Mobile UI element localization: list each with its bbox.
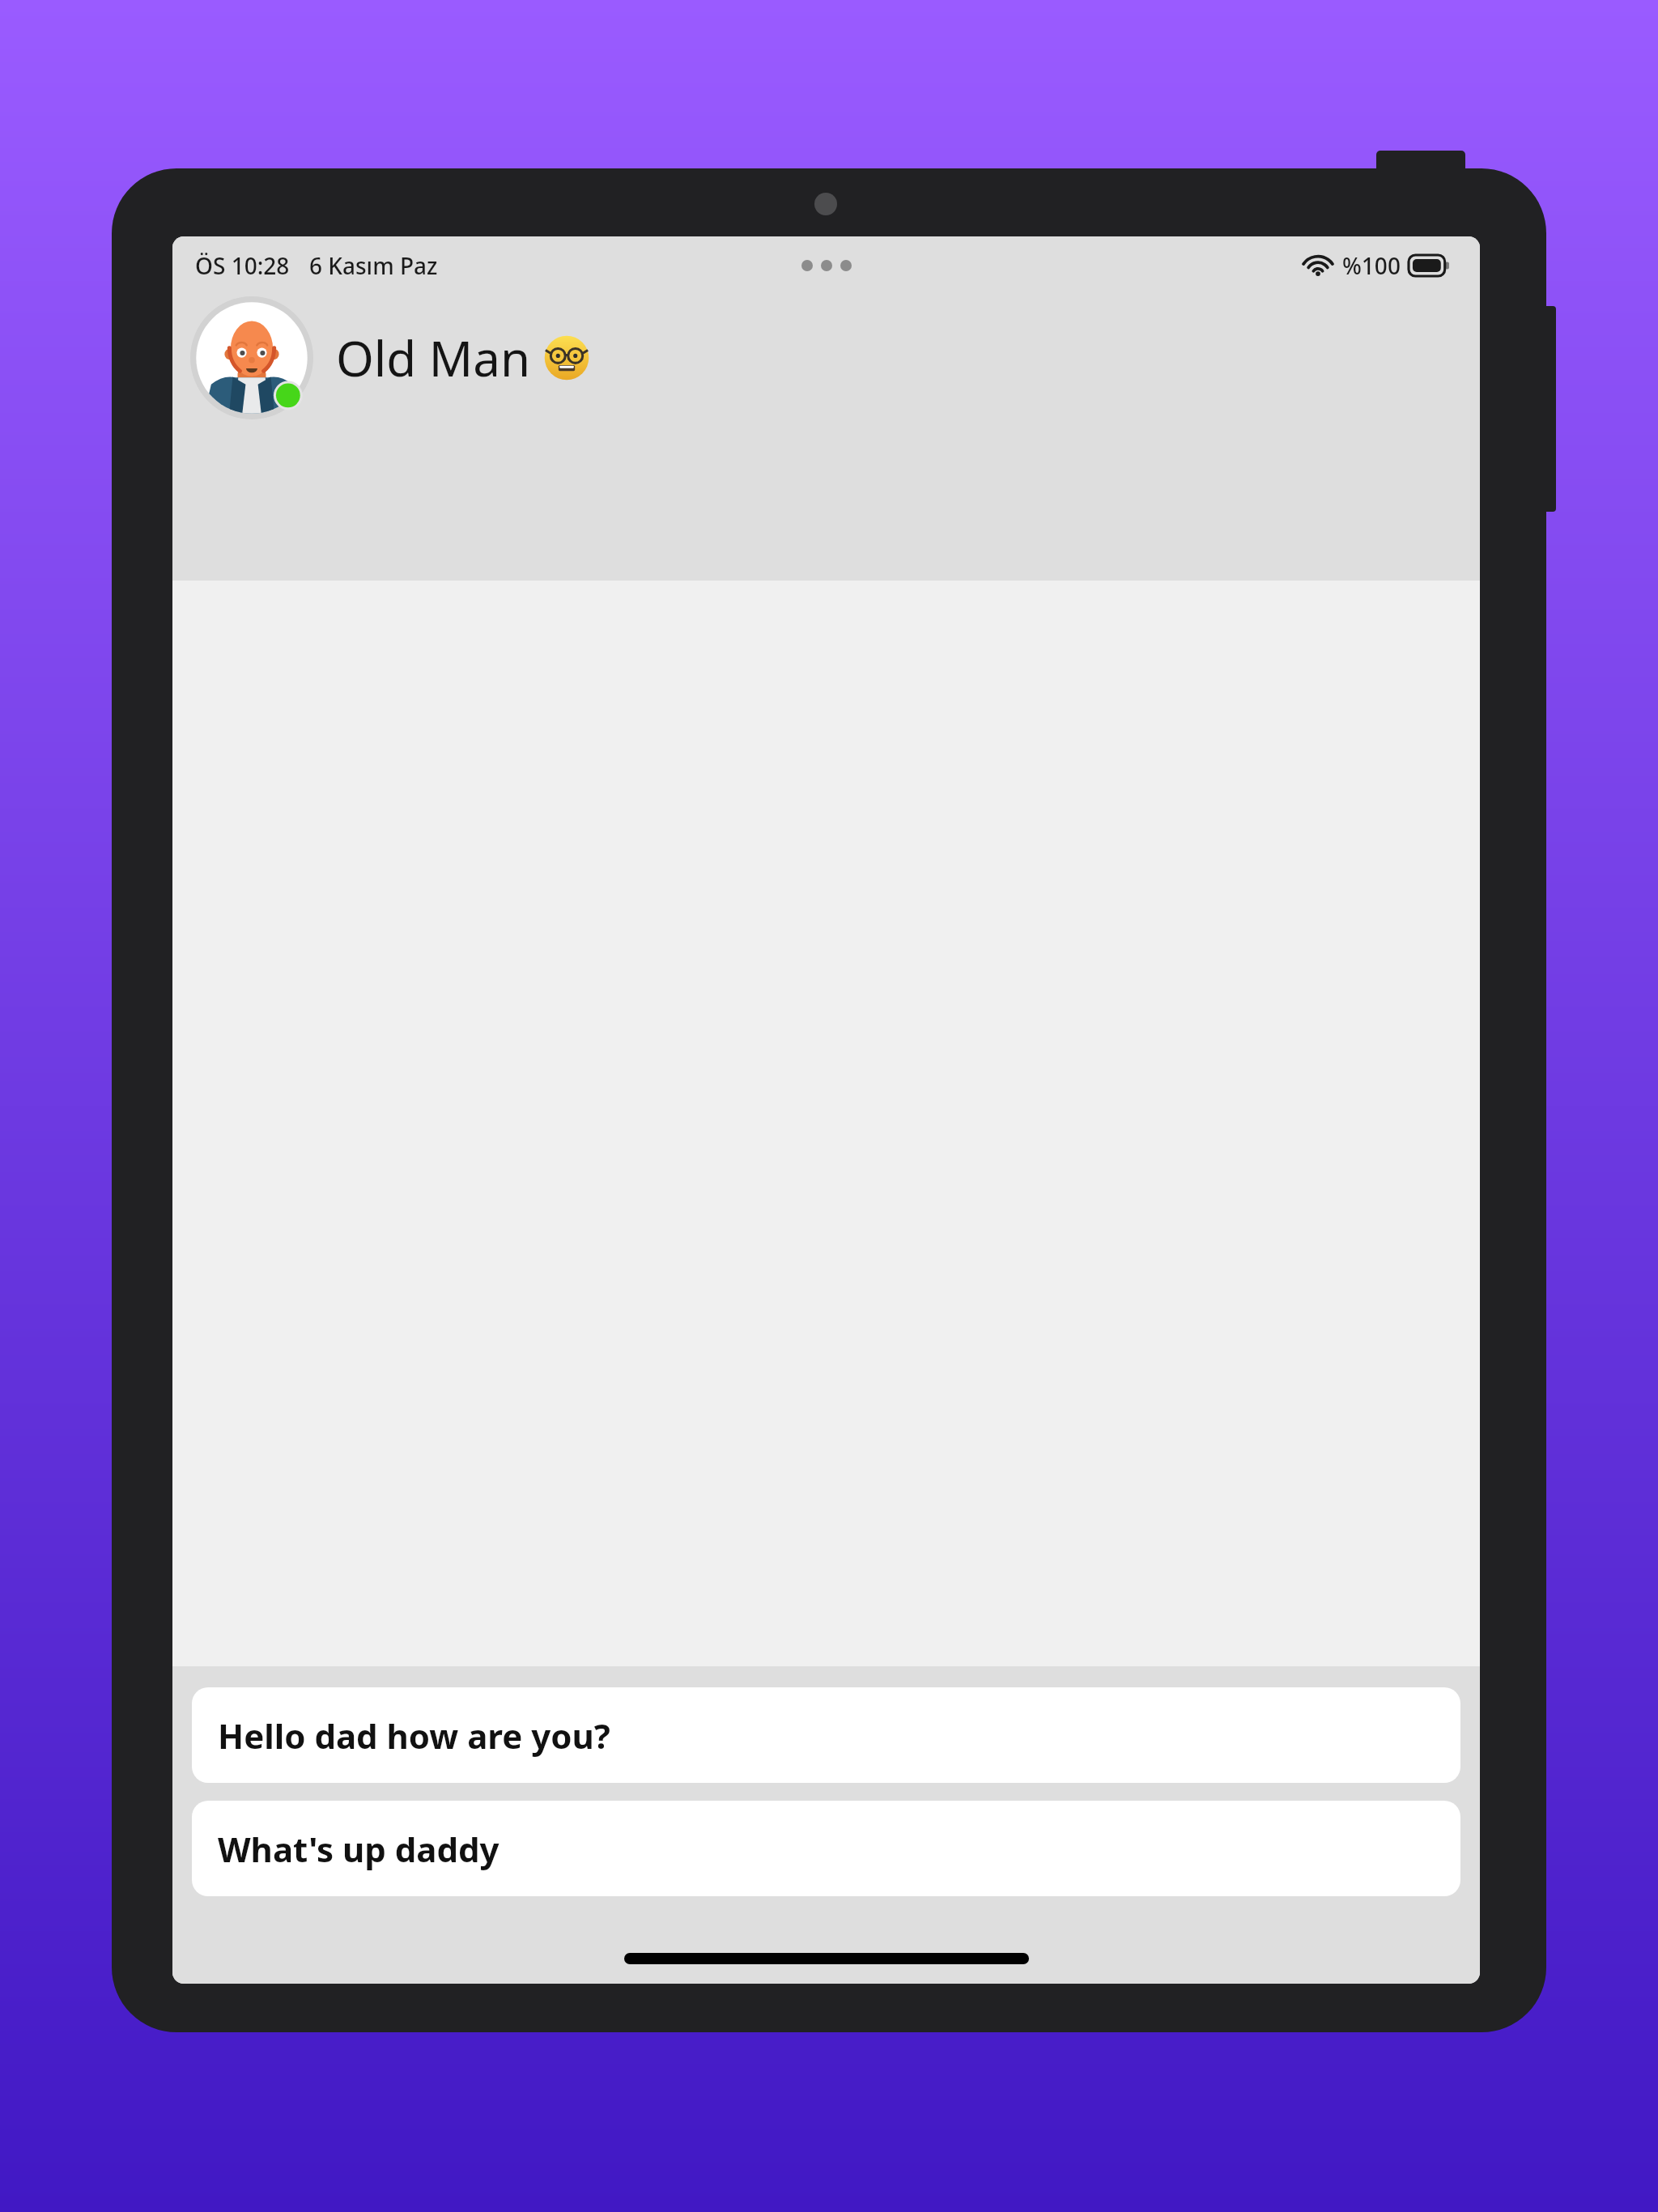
other: Profile photo, online <box>190 296 313 419</box>
staticText: 6 Kasım Paz <box>309 250 438 281</box>
staticText: %100 <box>1342 250 1401 281</box>
button[interactable]: Hello dad how are you? <box>192 1687 1460 1783</box>
staticText: What's up daddy <box>218 1826 500 1872</box>
staticText: Old Man <box>336 325 530 391</box>
other: Nerd face emoji <box>543 334 590 381</box>
button[interactable]: What's up daddy <box>192 1801 1460 1896</box>
staticText: Hello dad how are you? <box>218 1712 610 1759</box>
staticText: ÖS 10:28 <box>195 250 290 281</box>
button[interactable]: Profile photo, online <box>190 296 1480 419</box>
